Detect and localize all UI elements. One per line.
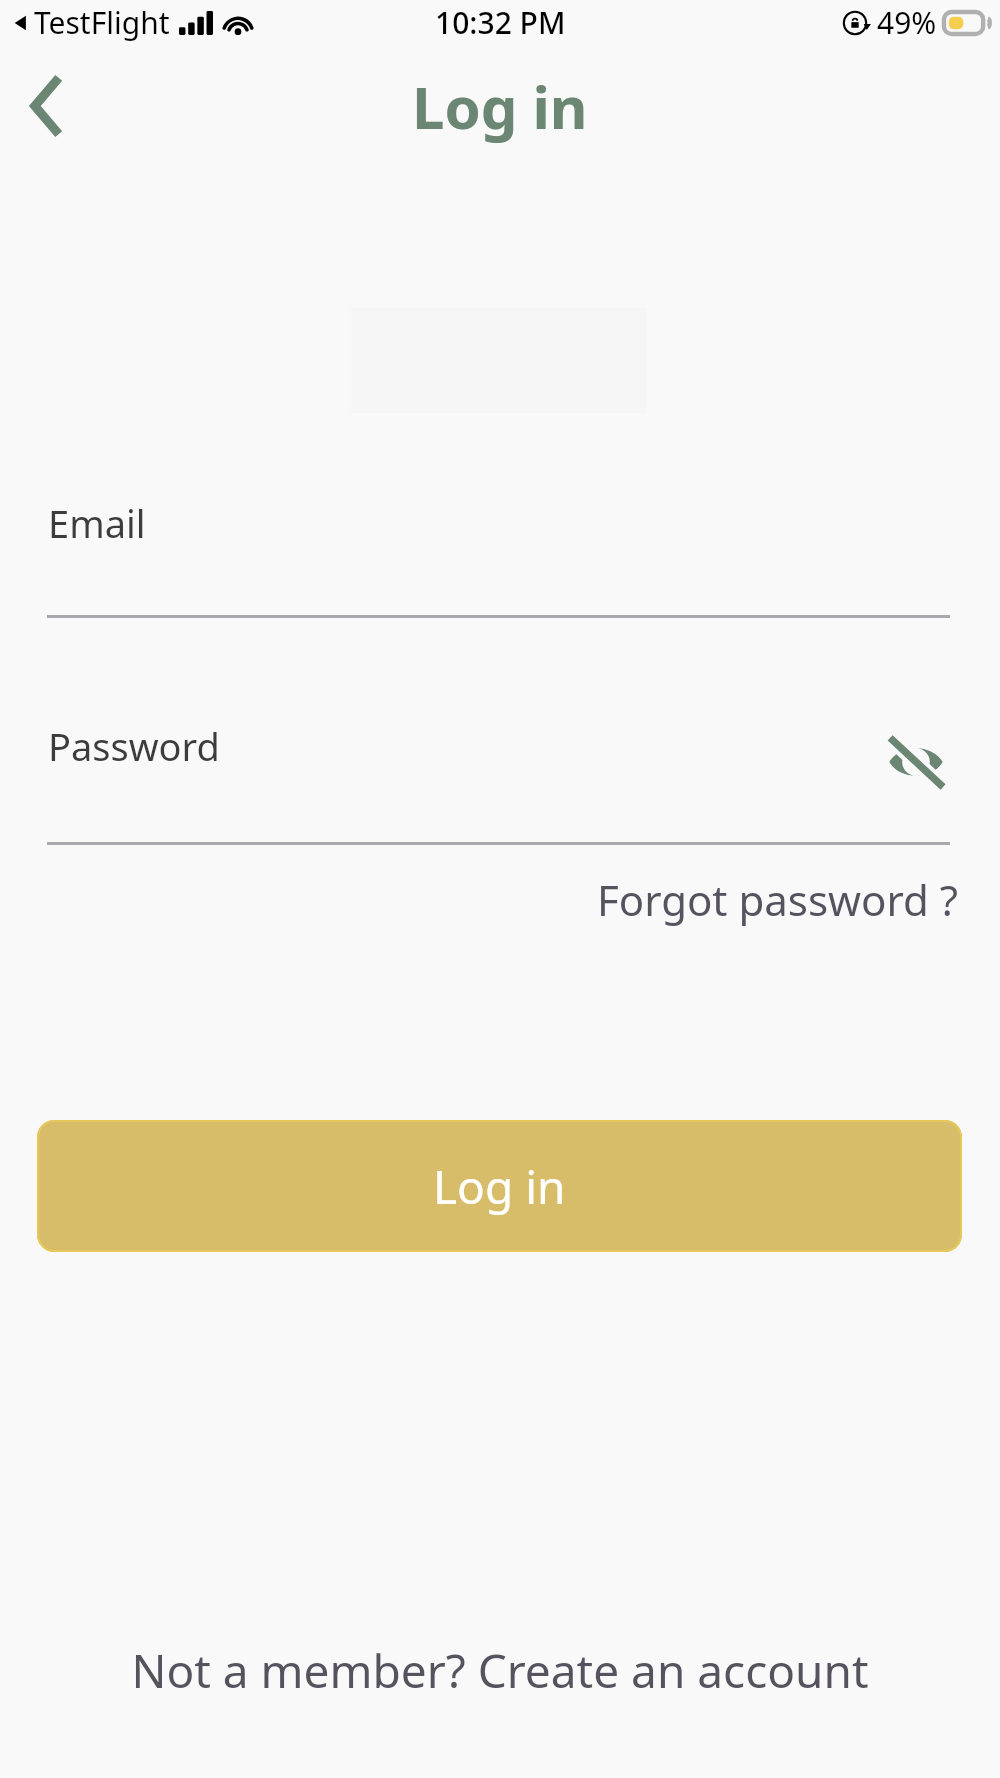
staticText: Log in (412, 67, 588, 146)
button[interactable]: Show password (882, 728, 950, 796)
staticText: Not a member? Create an account (131, 1639, 869, 1702)
staticText: Log in (433, 1155, 566, 1218)
staticText: Password (48, 720, 220, 772)
staticText: TestFlight (34, 2, 170, 43)
button[interactable]: Email (0, 497, 1000, 618)
button[interactable]: Password (0, 720, 1000, 845)
staticText: 10:32 PM (435, 2, 566, 43)
button[interactable]: Forgot password ? (593, 861, 962, 938)
button[interactable]: Log in (37, 1120, 962, 1252)
staticText: 49% (877, 2, 937, 43)
staticText: Email (48, 497, 146, 549)
button[interactable]: Back (14, 75, 76, 137)
button[interactable]: Not a member? Create an account (119, 1627, 881, 1714)
staticText: Forgot password ? (597, 871, 958, 928)
